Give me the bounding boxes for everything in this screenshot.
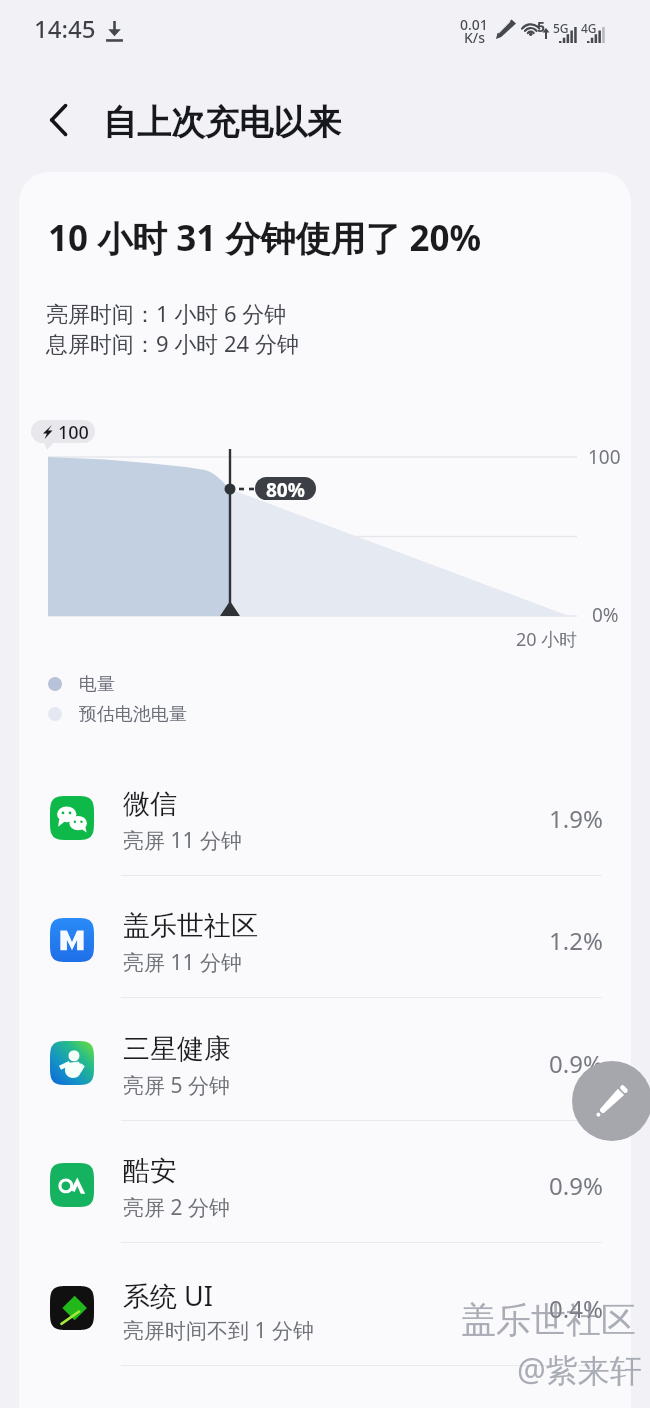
staticText: @紫来轩 [517,1348,642,1392]
staticText: 0.01 [460,15,488,34]
staticText: 亮屏 2 分钟 [123,1193,230,1222]
staticText: 100 [58,420,89,443]
staticText: 1.2% [549,924,603,957]
staticText: 14:45 [34,12,96,45]
staticText: K/s [464,28,486,47]
staticText: 10 小时 31 分钟使用了 20% [48,214,482,262]
staticText: 1.9% [549,802,603,835]
staticText: 酷安 [123,1154,177,1188]
staticText: 5 [537,17,546,36]
button[interactable]: 系统 UI [19,1248,631,1368]
staticText: 4G [581,20,597,36]
staticText: 盖乐世社区 [461,1298,636,1342]
staticText: 息屏时间：9 小时 24 分钟 [46,328,299,358]
staticText: 100 [588,444,621,470]
staticText: 预估电池电量 [79,703,187,726]
staticText: 0.4% [549,1292,603,1325]
staticText: 0.9% [549,1047,603,1080]
staticText: 电量 [79,673,115,696]
staticText: 盖乐世社区 [123,909,258,943]
button[interactable]: 酷安 [19,1125,631,1245]
staticText: 亮屏时间不到 1 分钟 [123,1316,314,1345]
button[interactable]: 微信 [19,758,631,878]
staticText: 亮屏 5 分钟 [123,1071,230,1100]
staticText: 三星健康 [123,1032,231,1066]
staticText: 微信 [123,787,177,821]
staticText: 系统 UI [123,1277,213,1314]
staticText: 20 小时 [516,627,578,652]
button[interactable]: 三星健康 [19,1003,631,1123]
staticText: 80% [266,477,305,500]
staticText: 自上次充电以来 [103,101,341,144]
staticText: 亮屏 11 分钟 [123,826,242,855]
button[interactable]: Back [35,95,85,145]
button[interactable]: 盖乐世社区 [19,880,631,1000]
staticText: 0.9% [549,1169,603,1202]
staticText: 亮屏 11 分钟 [123,948,242,977]
staticText: 0% [592,602,619,628]
staticText: 5G [553,20,569,36]
staticText: 亮屏时间：1 小时 6 分钟 [46,298,287,328]
button[interactable]: Edit [572,1061,650,1141]
